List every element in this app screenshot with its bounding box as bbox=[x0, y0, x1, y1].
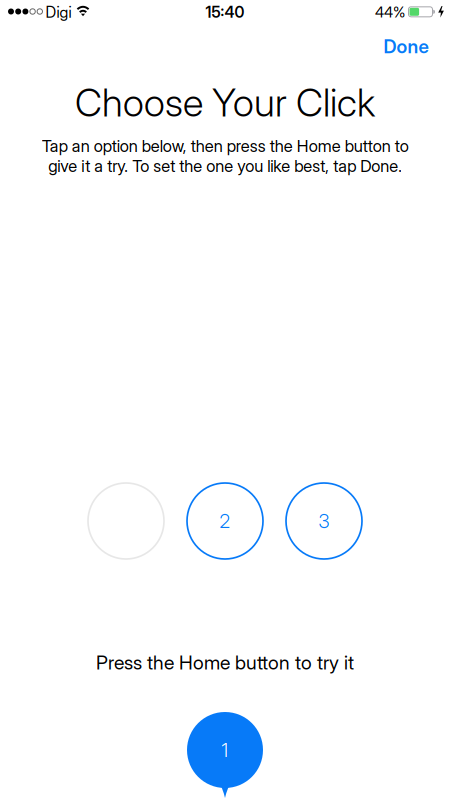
staticText: 44% bbox=[375, 3, 405, 21]
staticText: Digi bbox=[45, 3, 71, 21]
staticText: Choose Your Click bbox=[75, 79, 375, 126]
button[interactable]: Click style 3 bbox=[286, 483, 362, 559]
staticText: 3 bbox=[318, 509, 329, 533]
button[interactable]: Click style 2 bbox=[187, 483, 263, 559]
staticText: 15:40 bbox=[205, 3, 244, 21]
button[interactable]: Done bbox=[383, 35, 428, 58]
staticText: Press the Home button to try it bbox=[96, 651, 354, 674]
button[interactable]: Click style 1 bbox=[88, 483, 164, 559]
staticText: Tap an option below, then press the Home… bbox=[41, 136, 408, 176]
staticText: 2 bbox=[219, 509, 230, 533]
staticText: Done bbox=[383, 35, 428, 58]
staticText: 1 bbox=[221, 738, 228, 762]
